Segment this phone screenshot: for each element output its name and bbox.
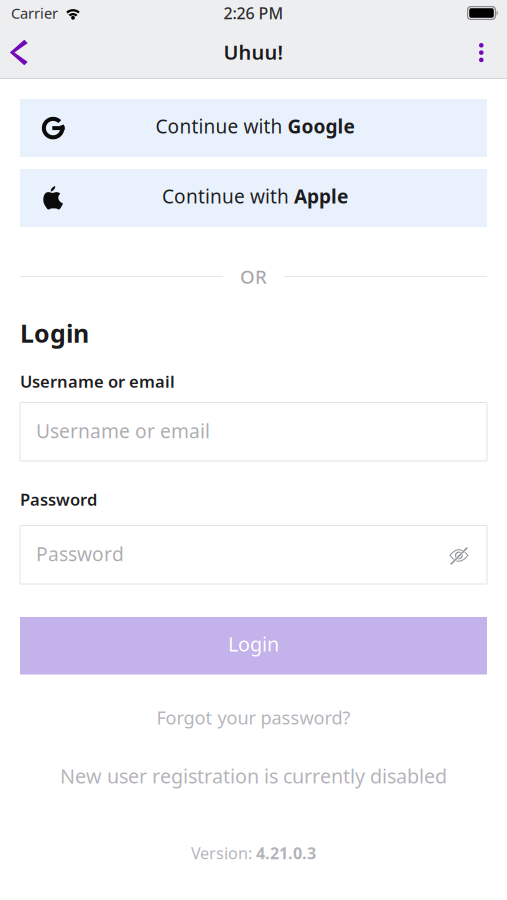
button[interactable]: Continue with: [20, 169, 487, 227]
staticText: 4.21.0.3: [256, 842, 316, 864]
staticText: Continue with: [162, 183, 294, 209]
button[interactable]: Back: [0, 30, 45, 78]
staticText: New user registration is currently disab…: [60, 762, 447, 789]
button[interactable]: Login: [20, 617, 487, 674]
staticText: Forgot your password?: [156, 705, 350, 730]
staticText: Login: [228, 630, 279, 657]
staticText: Google: [287, 113, 354, 139]
staticText: Login: [20, 316, 89, 350]
staticText: Apple: [294, 183, 348, 209]
button[interactable]: Continue with: [20, 99, 487, 157]
staticText: Password: [36, 541, 124, 567]
button[interactable]: Forgot your password?: [20, 704, 487, 730]
staticText: Continue with: [155, 113, 287, 139]
staticText: Uhuu!: [223, 39, 283, 65]
staticText: Password: [20, 488, 97, 510]
button[interactable]: More options: [457, 30, 507, 78]
staticText: 2:26 PM: [223, 2, 283, 24]
staticText: OR: [240, 264, 267, 289]
staticText: Carrier: [11, 3, 58, 23]
staticText: Version:: [191, 842, 256, 864]
staticText: Username or email: [36, 418, 210, 444]
staticText: Username or email: [20, 370, 175, 392]
